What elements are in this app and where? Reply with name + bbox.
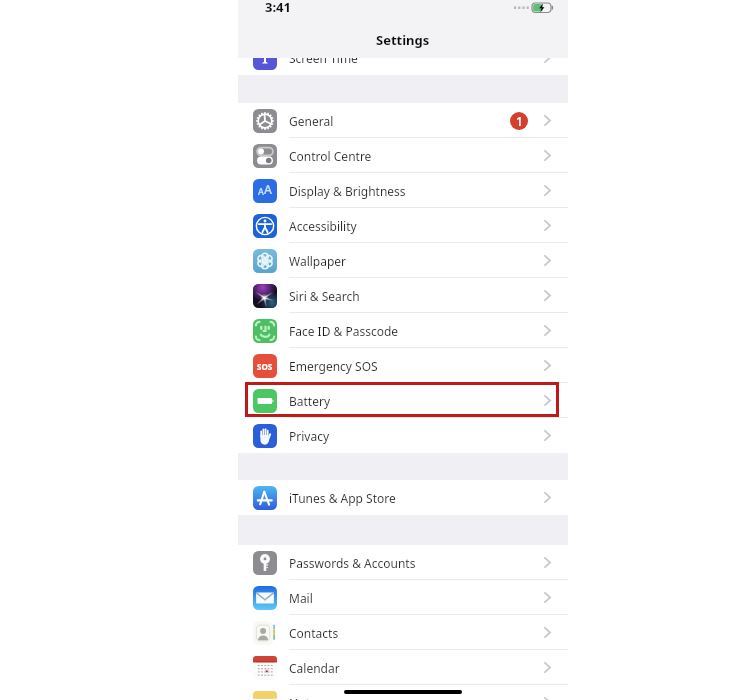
staticText: Battery (289, 393, 331, 409)
staticText: Screen Time (289, 50, 358, 66)
button[interactable]: Notes (238, 685, 568, 700)
button[interactable]: Passwords & Accounts (238, 545, 568, 580)
staticText: Passwords & Accounts (289, 555, 416, 571)
staticText: Calendar (289, 660, 340, 676)
button[interactable]: SOS (238, 348, 568, 383)
button[interactable]: General (238, 103, 568, 138)
staticText: Face ID & Passcode (289, 323, 399, 339)
staticText: Accessibility (289, 218, 357, 234)
staticText: Notes (289, 695, 323, 700)
staticText: Contacts (289, 625, 339, 641)
button[interactable]: Face ID & Passcode (238, 313, 568, 348)
staticText: A (264, 181, 272, 197)
staticText: Emergency SOS (289, 358, 378, 374)
button[interactable]: iTunes & App Store (238, 480, 568, 515)
button[interactable]: Contacts (238, 615, 568, 650)
button[interactable]: Screen Time (238, 40, 568, 75)
staticText: Siri & Search (289, 288, 360, 304)
button[interactable]: Calendar (238, 650, 568, 685)
button[interactable]: A (238, 173, 568, 208)
button[interactable]: Siri & Search (238, 278, 568, 313)
button[interactable]: Battery (238, 383, 568, 418)
staticText: Wallpaper (289, 253, 347, 269)
staticText: Settings (376, 31, 430, 49)
button[interactable]: Privacy (238, 418, 568, 453)
staticText: SOS (257, 361, 273, 372)
staticText: A (258, 185, 264, 197)
button[interactable]: Control Centre (238, 138, 568, 173)
button[interactable]: Accessibility (238, 208, 568, 243)
staticText: Control Centre (289, 148, 372, 164)
staticText: Display & Brightness (289, 183, 406, 199)
button[interactable]: Mail (238, 580, 568, 615)
staticText: 3:41 (265, 0, 291, 16)
staticText: Privacy (289, 428, 330, 444)
staticText: Mail (289, 590, 313, 606)
staticText: 1 (516, 113, 523, 129)
button[interactable]: Wallpaper (238, 243, 568, 278)
staticText: General (289, 113, 334, 129)
staticText: iTunes & App Store (289, 490, 396, 506)
